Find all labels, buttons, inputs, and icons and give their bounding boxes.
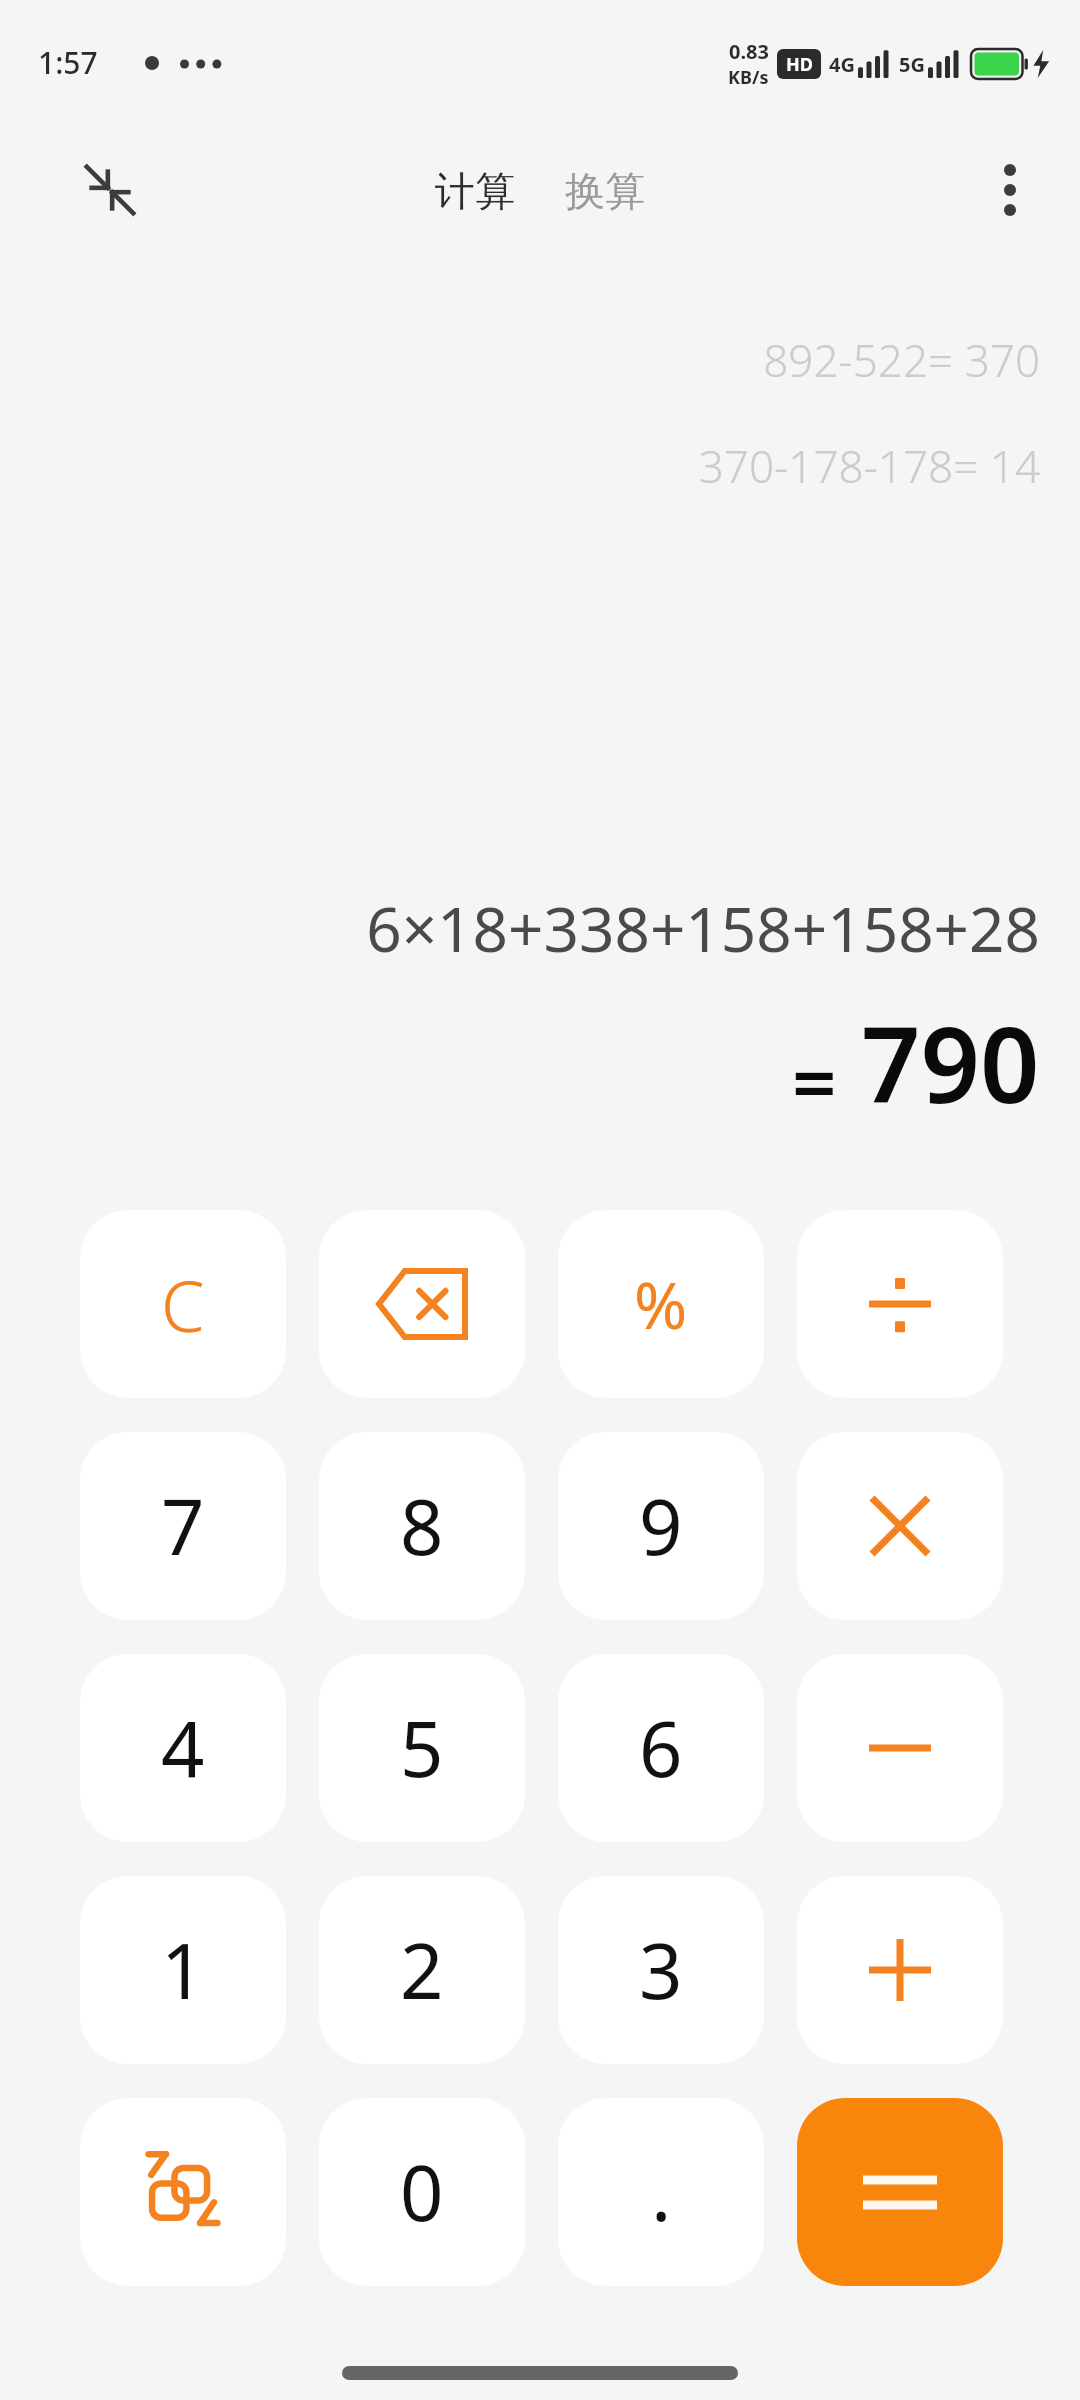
staticText: 4G (829, 51, 855, 78)
button[interactable]: 5 (319, 1654, 525, 1842)
button[interactable]: 7 (80, 1432, 286, 1620)
staticText: 1:57 (38, 42, 98, 83)
button[interactable]: div (797, 1210, 1003, 1398)
button[interactable]: add (797, 1876, 1003, 2064)
staticText: = (792, 1028, 837, 1134)
button[interactable]: Equals (797, 2098, 1003, 2286)
button[interactable]: 6 (558, 1654, 764, 1842)
staticText: . (651, 2140, 672, 2244)
staticText: C (161, 1257, 205, 1352)
button[interactable]: 计算 (421, 158, 529, 224)
button[interactable]: 0 (319, 2098, 525, 2286)
staticText: 9 (639, 1474, 683, 1578)
button[interactable]: 4 (80, 1654, 286, 1842)
staticText: 3 (639, 1918, 683, 2022)
button[interactable]: 2 (319, 1876, 525, 2064)
button[interactable]: . (558, 2098, 764, 2286)
staticText: 8 (400, 1474, 444, 1578)
staticText: 0.83 (729, 38, 769, 65)
staticText: % (634, 1261, 688, 1348)
staticText: 换算 (565, 166, 645, 216)
staticText: 6×18+338+158+158+28 (0, 886, 1040, 970)
staticText: 6 (639, 1696, 683, 1800)
staticText: 5G (899, 51, 925, 78)
button[interactable]: 8 (319, 1432, 525, 1620)
staticText: 7 (161, 1474, 205, 1578)
button[interactable]: 1 (80, 1876, 286, 2064)
staticText: 0 (400, 2140, 444, 2244)
button[interactable]: 9 (558, 1432, 764, 1620)
button[interactable]: sci (80, 2098, 286, 2286)
staticText: 计算 (435, 166, 515, 216)
staticText: 892-522= 370 (0, 330, 1040, 390)
button[interactable]: sub (797, 1654, 1003, 1842)
staticText: 5 (400, 1696, 444, 1800)
staticText: HD (786, 52, 813, 77)
button[interactable]: mul (797, 1432, 1003, 1620)
staticText: 4 (161, 1696, 205, 1800)
staticText: 370-178-178= 14 (0, 436, 1040, 496)
button[interactable]: Collapse (68, 148, 152, 232)
staticText: 790 (861, 992, 1040, 1134)
button[interactable]: % (558, 1210, 764, 1398)
button[interactable]: 换算 (551, 158, 659, 224)
staticText: 2 (400, 1918, 444, 2022)
staticText: 1 (161, 1918, 205, 2022)
button[interactable]: More options (968, 148, 1052, 232)
button[interactable]: C (80, 1210, 286, 1398)
button[interactable]: 3 (558, 1876, 764, 2064)
button[interactable]: back (319, 1210, 525, 1398)
staticText: KB/s (728, 65, 769, 90)
